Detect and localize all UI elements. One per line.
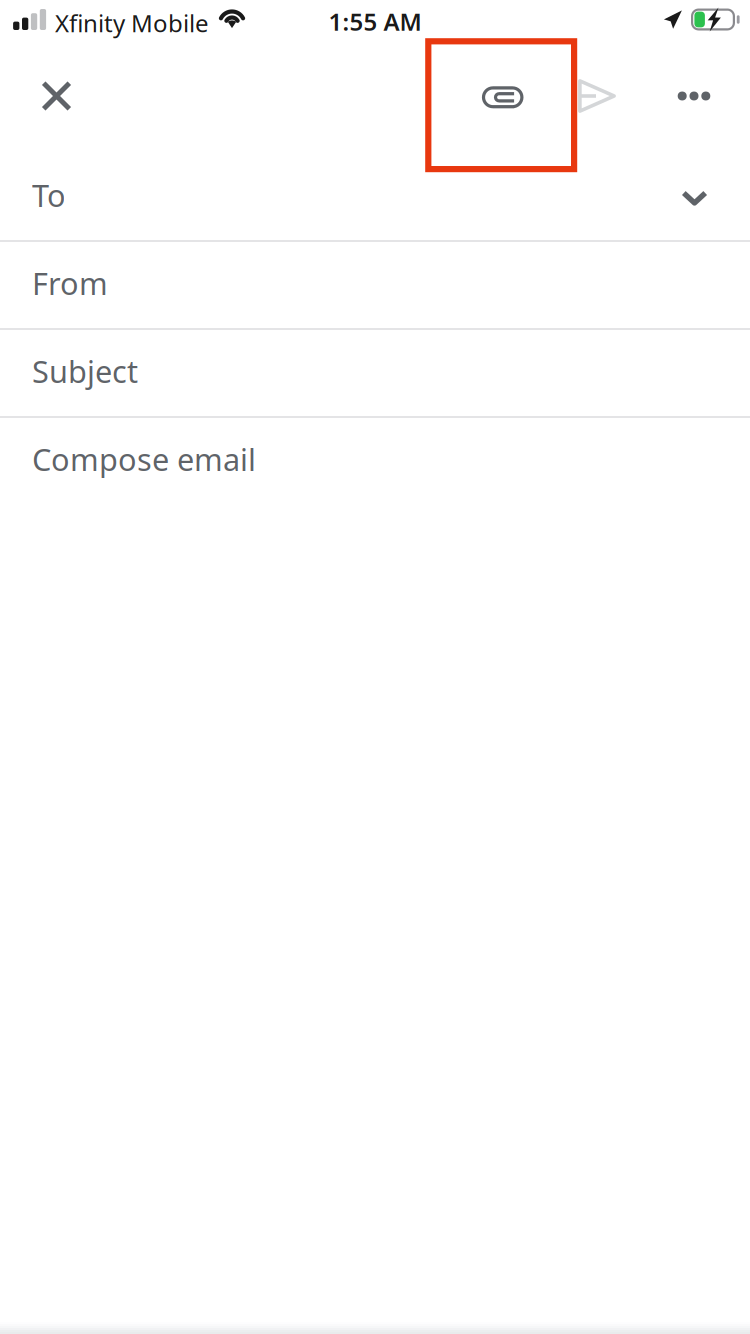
button[interactable]: More options bbox=[646, 40, 742, 152]
staticText: Xfinity Mobile bbox=[55, 7, 209, 39]
button[interactable]: From bbox=[0, 242, 750, 330]
staticText: Subject bbox=[32, 351, 138, 391]
button[interactable]: To bbox=[0, 154, 750, 242]
button[interactable]: Send bbox=[549, 40, 645, 152]
button[interactable]: Compose email bbox=[0, 418, 750, 506]
staticText: From bbox=[32, 263, 108, 303]
staticText: To bbox=[32, 175, 66, 215]
button[interactable]: Close bbox=[8, 40, 104, 152]
button[interactable]: Attach file bbox=[456, 40, 552, 152]
staticText: 1:55 AM bbox=[328, 5, 421, 37]
button[interactable]: Subject bbox=[0, 330, 750, 418]
staticText: Compose email bbox=[32, 439, 256, 479]
